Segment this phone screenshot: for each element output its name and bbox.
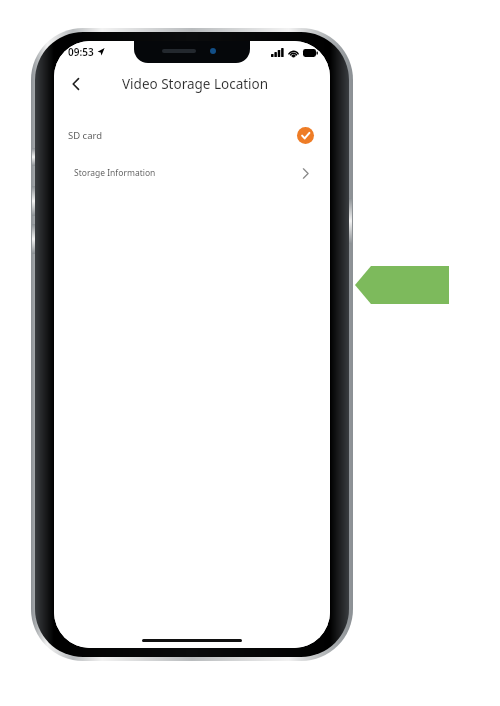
button[interactable]: SD card — [54, 118, 330, 152]
staticText: SD card — [68, 129, 103, 142]
staticText: Video Storage Location — [122, 75, 269, 93]
button[interactable]: Storage Information — [54, 158, 330, 188]
staticText: Storage Information — [74, 167, 156, 179]
button[interactable]: Back — [60, 68, 92, 100]
staticText: 09:53 — [68, 45, 94, 59]
